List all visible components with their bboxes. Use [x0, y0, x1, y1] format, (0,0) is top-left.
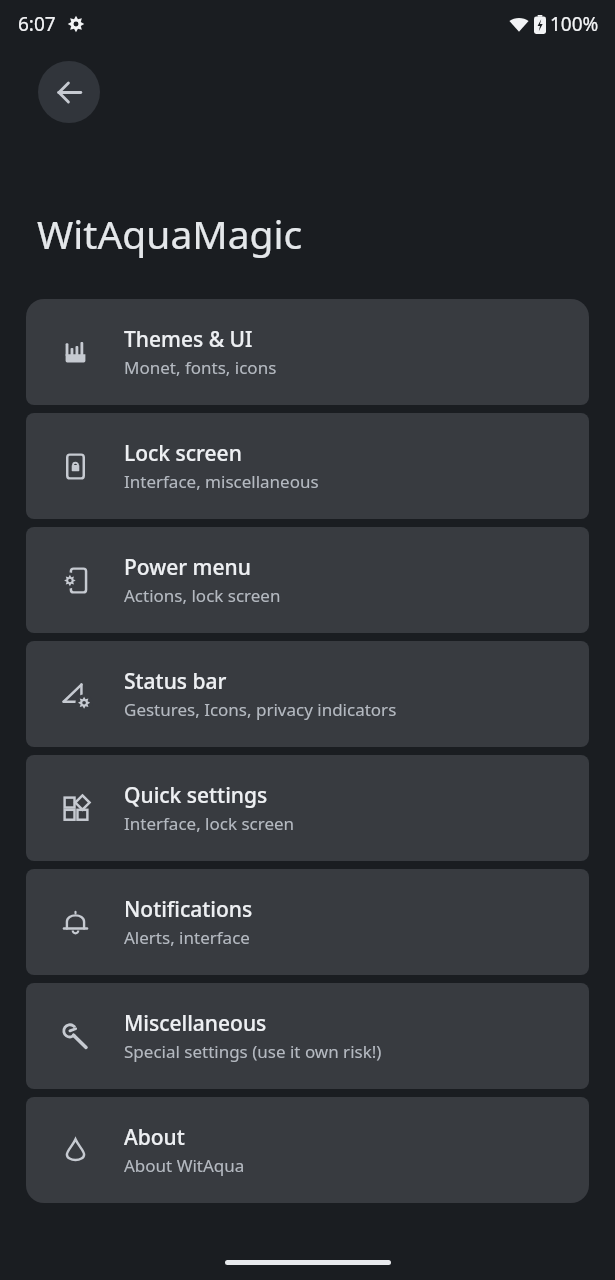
- button[interactable]: Quick settings: [26, 755, 589, 861]
- staticText: About WitAqua: [124, 1154, 245, 1177]
- staticText: Themes & UI: [124, 325, 253, 354]
- staticText: Interface, miscellaneous: [124, 470, 319, 493]
- staticText: 6:07: [18, 11, 56, 37]
- button[interactable]: About: [26, 1097, 589, 1203]
- staticText: Lock screen: [124, 439, 242, 468]
- staticText: Alerts, interface: [124, 926, 250, 949]
- staticText: About: [124, 1123, 185, 1152]
- staticText: Miscellaneous: [124, 1009, 267, 1038]
- staticText: 100%: [550, 11, 599, 37]
- staticText: Gestures, Icons, privacy indicators: [124, 698, 397, 721]
- button[interactable]: Status bar: [26, 641, 589, 747]
- staticText: Actions, lock screen: [124, 584, 281, 607]
- button[interactable]: Back: [38, 61, 100, 123]
- staticText: Monet, fonts, icons: [124, 356, 277, 379]
- staticText: WitAquaMagic: [37, 207, 303, 260]
- staticText: Status bar: [124, 667, 227, 696]
- button[interactable]: Power menu: [26, 527, 589, 633]
- staticText: Notifications: [124, 895, 253, 924]
- staticText: Power menu: [124, 553, 251, 582]
- button[interactable]: Miscellaneous: [26, 983, 589, 1089]
- staticText: Special settings (use it own risk!): [124, 1040, 382, 1063]
- button[interactable]: Notifications: [26, 869, 589, 975]
- button[interactable]: Lock screen: [26, 413, 589, 519]
- staticText: Interface, lock screen: [124, 812, 295, 835]
- staticText: Quick settings: [124, 781, 268, 810]
- button[interactable]: Themes & UI: [26, 299, 589, 405]
